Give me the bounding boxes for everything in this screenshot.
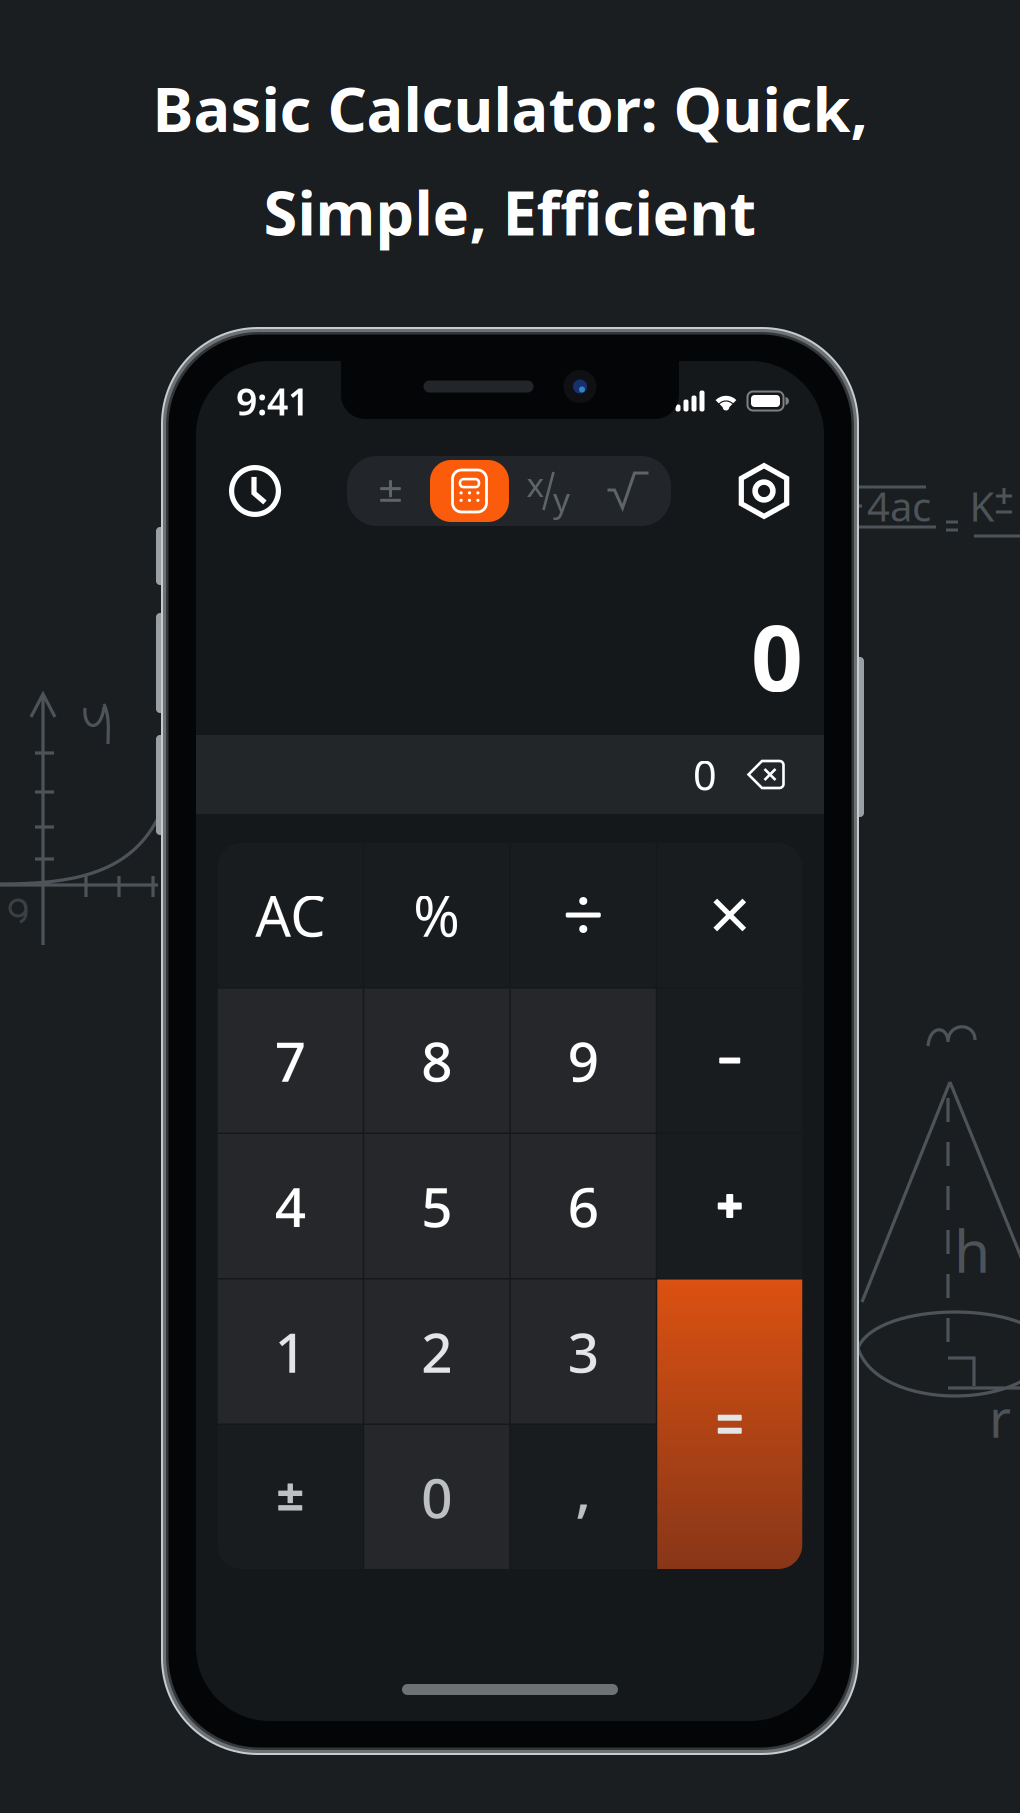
button[interactable]: 9 bbox=[511, 988, 656, 1132]
staticText: 0 bbox=[421, 1461, 452, 1533]
button[interactable]: Plus bbox=[657, 1134, 802, 1278]
staticText: 8 bbox=[421, 1024, 452, 1097]
button[interactable]: 7 bbox=[218, 988, 363, 1132]
button[interactable]: 3 bbox=[511, 1279, 656, 1423]
button[interactable]: 0 bbox=[364, 1425, 509, 1569]
button[interactable]: Divide bbox=[511, 843, 656, 987]
button[interactable]: Fractions bbox=[509, 460, 588, 522]
button[interactable]: 8 bbox=[364, 988, 509, 1132]
button[interactable]: 4 bbox=[218, 1134, 363, 1278]
button[interactable]: Calculator bbox=[430, 460, 509, 522]
button[interactable]: Minus bbox=[657, 988, 802, 1132]
button[interactable]: % bbox=[364, 843, 509, 987]
button[interactable]: Plus minus bbox=[351, 460, 430, 522]
staticText: 0 bbox=[693, 747, 717, 802]
staticText: , bbox=[575, 1449, 591, 1527]
staticText: r bbox=[989, 1382, 1011, 1452]
staticText: x bbox=[526, 462, 544, 506]
button[interactable]: AC bbox=[218, 843, 363, 987]
staticText: 5 bbox=[421, 1170, 452, 1242]
button[interactable]: Decimal separator bbox=[511, 1425, 656, 1569]
staticText: 0 bbox=[751, 596, 803, 716]
staticText: 4 bbox=[275, 1170, 306, 1242]
button[interactable]: Delete bbox=[717, 759, 785, 789]
button[interactable]: Multiply bbox=[657, 843, 802, 987]
button[interactable]: 6 bbox=[511, 1134, 656, 1278]
staticText: 3 bbox=[568, 1315, 599, 1388]
staticText: K bbox=[969, 479, 994, 532]
button[interactable]: Square root bbox=[588, 460, 667, 522]
staticText: Simple, Efficient bbox=[263, 171, 756, 252]
button[interactable]: Equals bbox=[657, 1279, 802, 1569]
staticText: % bbox=[413, 878, 460, 952]
staticText: y bbox=[553, 477, 570, 521]
button[interactable]: History bbox=[229, 465, 281, 517]
button[interactable]: 1 bbox=[218, 1279, 363, 1423]
staticText: 7 bbox=[275, 1024, 306, 1097]
button[interactable]: Plus minus bbox=[218, 1425, 363, 1569]
staticText: AC bbox=[255, 878, 325, 952]
staticText: 4ac bbox=[867, 479, 931, 532]
staticText: 2 bbox=[421, 1315, 452, 1388]
button[interactable]: 2 bbox=[364, 1279, 509, 1423]
staticText: Basic Calculator: Quick, bbox=[152, 68, 867, 149]
button[interactable]: Settings bbox=[737, 464, 791, 518]
staticText: h bbox=[954, 1211, 990, 1289]
button[interactable]: 5 bbox=[364, 1134, 509, 1278]
staticText: 9 bbox=[568, 1024, 599, 1097]
staticText: 6 bbox=[568, 1170, 599, 1242]
staticText: 9:41 bbox=[236, 376, 309, 426]
staticText: 1 bbox=[275, 1315, 306, 1388]
